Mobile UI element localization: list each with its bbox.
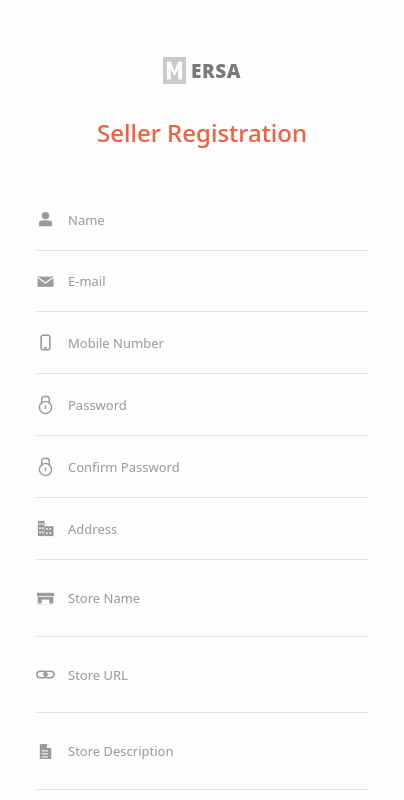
staticText: Mobile Number [68,334,164,352]
staticText: Confirm Password [68,458,180,476]
button[interactable]: Name [0,189,404,251]
staticText: Seller Registration [0,116,404,149]
staticText: Password [68,396,127,414]
button[interactable]: Address [0,498,404,560]
button[interactable]: Mobile Number [0,312,404,374]
staticText: Store Description [68,742,174,760]
button[interactable]: Password [0,374,404,436]
button[interactable]: Store Name [0,560,404,637]
button[interactable]: Store URL [0,637,404,713]
staticText: E-mail [68,272,106,290]
staticText: Name [68,211,105,229]
button[interactable]: Confirm Password [0,436,404,498]
button[interactable]: Store Description [0,713,404,790]
staticText: ERSA [191,58,242,84]
staticText: Store Name [68,589,141,607]
staticText: Address [68,520,118,538]
button[interactable]: E-mail [0,251,404,312]
staticText: Store URL [68,666,128,684]
